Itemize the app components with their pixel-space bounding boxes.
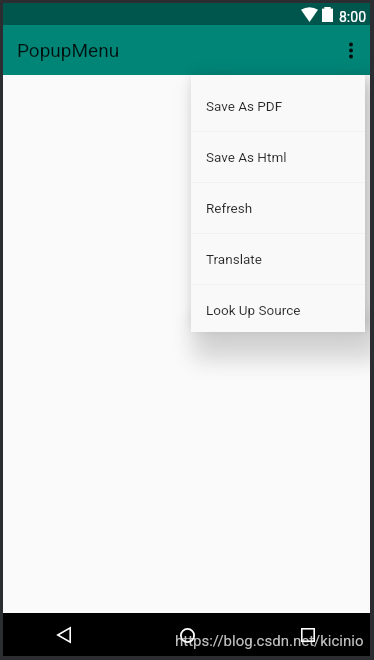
button[interactable]: Refresh xyxy=(191,183,365,233)
button[interactable]: Save As Html xyxy=(191,132,365,182)
button[interactable]: More options xyxy=(329,28,370,72)
button[interactable]: Save As PDF xyxy=(191,80,365,131)
staticText: Look Up Source xyxy=(206,302,301,318)
button[interactable]: Home xyxy=(167,615,207,655)
staticText: PopupMenu xyxy=(17,39,120,61)
staticText: Save As Html xyxy=(206,149,287,165)
staticText: https://blog.csdn.net/kicinio xyxy=(175,632,364,650)
staticText: 8:00 xyxy=(339,9,366,25)
button[interactable]: Back xyxy=(44,615,84,655)
button[interactable]: Look Up Source xyxy=(191,285,365,332)
button[interactable]: Translate xyxy=(191,234,365,284)
staticText: Refresh xyxy=(206,200,253,216)
button[interactable]: Recent apps xyxy=(288,615,328,655)
staticText: Save As PDF xyxy=(206,98,283,114)
staticText: Translate xyxy=(206,251,262,267)
